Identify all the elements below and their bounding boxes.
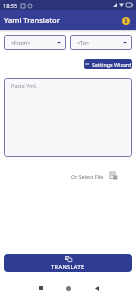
- button[interactable]: Back: [91, 282, 103, 294]
- button[interactable]: Home: [62, 282, 74, 294]
- staticText: 18:55: [3, 2, 18, 9]
- staticText: Or Select File: [71, 173, 104, 180]
- button[interactable]: Or Select File: [71, 170, 118, 182]
- staticText: TRANSLATE: [51, 263, 85, 271]
- staticText: Paste Yml.: [11, 82, 38, 89]
- button[interactable]: Paste Yml.: [4, 78, 132, 157]
- button[interactable]: <To>: [70, 35, 132, 50]
- staticText: Yaml Translator: [4, 15, 60, 25]
- button[interactable]: TRANSLATE: [4, 254, 132, 272]
- staticText: <To>: [77, 39, 90, 46]
- button[interactable]: Settings Wizard: [84, 59, 132, 69]
- button[interactable]: Recents: [35, 282, 47, 294]
- staticText: Settings Wizard: [92, 61, 132, 68]
- staticText: <From>: [11, 39, 31, 46]
- button[interactable]: Info: [119, 14, 132, 27]
- button[interactable]: <From>: [4, 35, 66, 50]
